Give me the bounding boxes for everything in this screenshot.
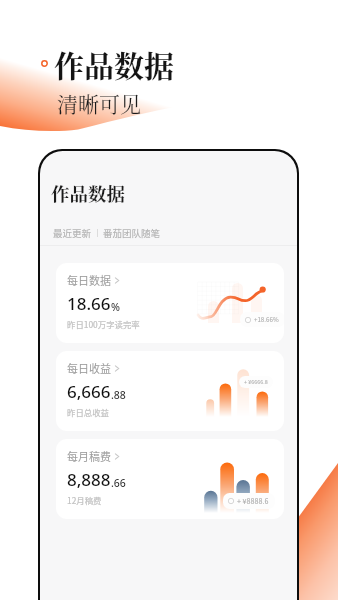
staticText: 每日数据 (67, 272, 111, 288)
button[interactable]: 每日数据 (56, 263, 284, 343)
staticText: 18.66 (67, 292, 111, 315)
staticText: 作品数据 (51, 180, 126, 207)
staticText: .88 (111, 388, 126, 402)
staticText: 6,666 (67, 380, 111, 403)
staticText: 12月稿费 (67, 494, 102, 506)
staticText: 清晰可见 (57, 88, 141, 118)
staticText: 8,888 (67, 468, 111, 491)
staticText: + ¥8888.6 (237, 496, 269, 506)
staticText: 作品数据 (54, 42, 174, 85)
staticText: 昨日总收益 (67, 406, 109, 418)
staticText: + ¥6666.8 (244, 378, 268, 386)
staticText: +18.66% (254, 315, 279, 324)
staticText: 番茄团队随笔 (103, 226, 161, 240)
staticText: 昨日100万字读完率 (67, 318, 140, 330)
staticText: % (111, 300, 120, 314)
staticText: 每日收益 (67, 360, 111, 376)
staticText: 每月稿费 (67, 448, 111, 464)
staticText: 最近更新 (53, 226, 92, 240)
button[interactable]: 每月稿费 (56, 439, 284, 519)
button[interactable]: 每日收益 (56, 351, 284, 431)
staticText: .66 (111, 476, 126, 490)
